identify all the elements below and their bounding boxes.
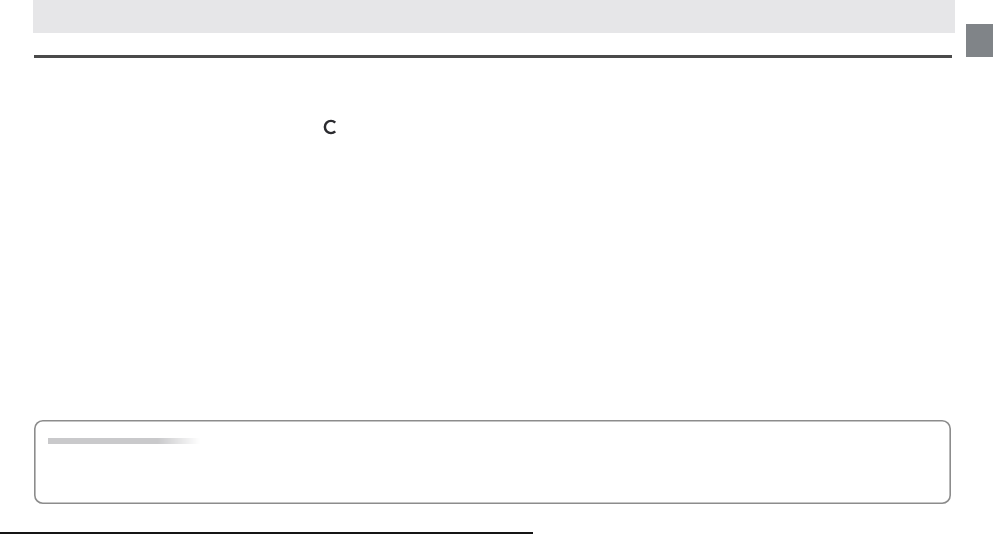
- button[interactable]: [34, 420, 951, 504]
- button[interactable]: Logo mark: [323, 119, 339, 135]
